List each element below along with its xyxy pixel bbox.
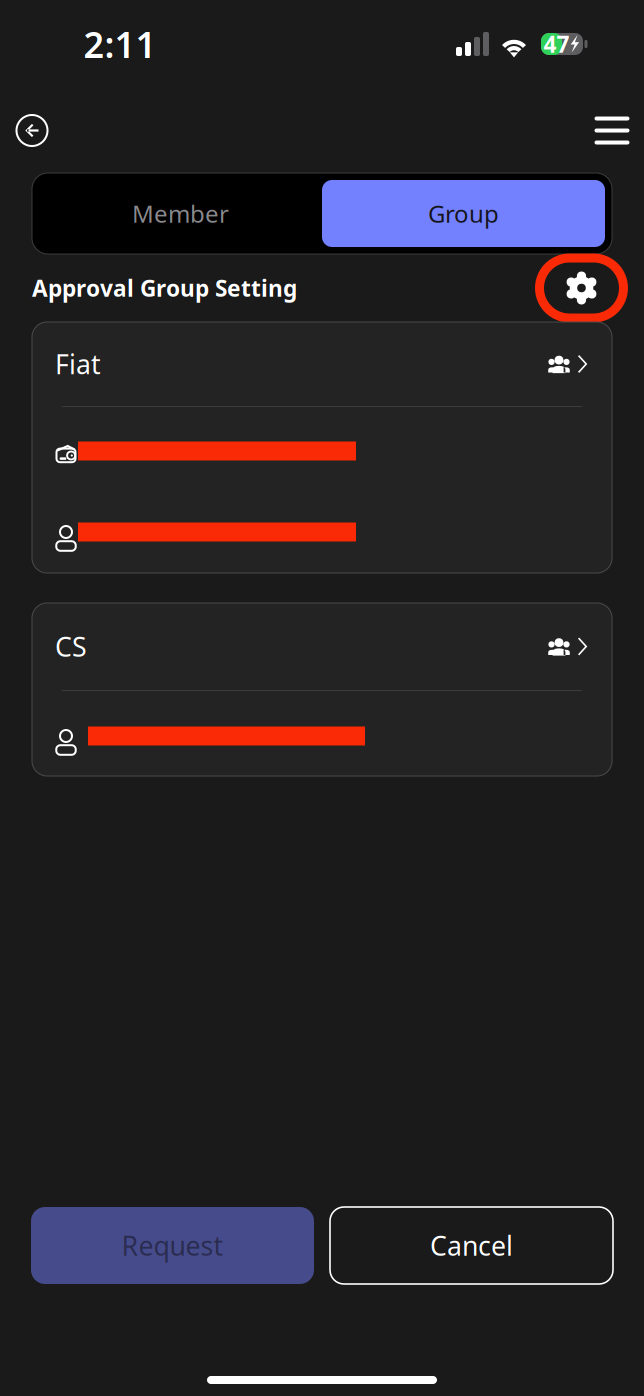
staticText: 2:11 — [83, 20, 156, 68]
staticText: Group — [428, 198, 499, 229]
button[interactable]: Cancel — [330, 1207, 613, 1284]
button[interactable]: Fiat — [32, 322, 612, 406]
button[interactable]: Group — [322, 180, 605, 247]
staticText: Request — [121, 1228, 223, 1263]
staticText: Member — [132, 198, 229, 229]
button[interactable]: Request — [31, 1207, 314, 1284]
button[interactable]: Member — [39, 180, 322, 247]
staticText: 47 — [543, 29, 569, 59]
staticText: Approval Group Setting — [32, 273, 297, 303]
button[interactable]: Back — [10, 108, 54, 152]
staticText: Cancel — [430, 1228, 513, 1263]
button[interactable]: CS — [32, 603, 612, 690]
button[interactable]: Settings — [533, 251, 630, 324]
button[interactable]: Menu — [590, 108, 634, 152]
staticText: CS — [55, 629, 87, 664]
staticText: Fiat — [55, 346, 101, 382]
